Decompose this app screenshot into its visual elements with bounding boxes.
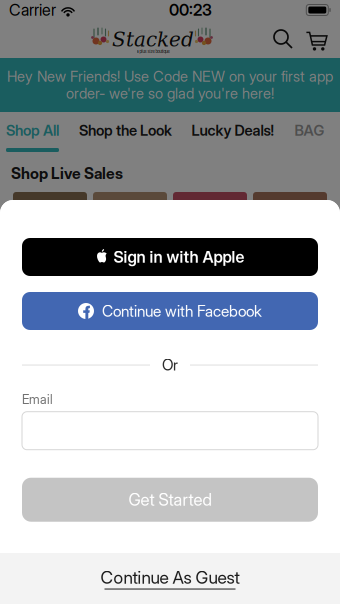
staticText: Continue with Facebook bbox=[102, 302, 262, 320]
staticText: Stacked bbox=[112, 30, 194, 49]
staticText: Shop Live Sales bbox=[11, 165, 123, 182]
staticText: Carrier bbox=[9, 1, 56, 19]
staticText: Shop All bbox=[6, 122, 59, 139]
staticText: Email bbox=[22, 392, 53, 407]
staticText: order- we're so glad you're here! bbox=[66, 85, 274, 102]
staticText: 00:23 bbox=[169, 1, 212, 19]
staticText: Shop the Look bbox=[79, 122, 172, 139]
button[interactable]: BAG bbox=[283, 112, 336, 149]
staticText: Get Started bbox=[128, 490, 211, 509]
button[interactable]: Continue As Guest bbox=[0, 553, 340, 604]
staticText: Lucky Deals! bbox=[191, 122, 273, 139]
staticText: BAG bbox=[294, 122, 324, 139]
button[interactable]: Shop the Look bbox=[69, 112, 182, 149]
staticText: Or bbox=[162, 356, 178, 374]
button[interactable]: Lucky Deals! bbox=[182, 112, 283, 149]
staticText: a plus size boutique bbox=[136, 49, 169, 54]
button[interactable]: Search bbox=[268, 24, 298, 54]
staticText: Sign in with Apple bbox=[113, 248, 244, 266]
button[interactable]: Get Started bbox=[22, 478, 318, 522]
button[interactable]: Shop All bbox=[0, 112, 69, 155]
button[interactable]: Sign in with Apple bbox=[22, 238, 318, 276]
button[interactable]: Continue with Facebook bbox=[22, 292, 318, 330]
staticText: Continue As Guest bbox=[100, 567, 239, 587]
button[interactable]: Shopping cart bbox=[302, 24, 332, 54]
staticText: Hey New Friends! Use Code NEW on your fi… bbox=[7, 68, 333, 85]
